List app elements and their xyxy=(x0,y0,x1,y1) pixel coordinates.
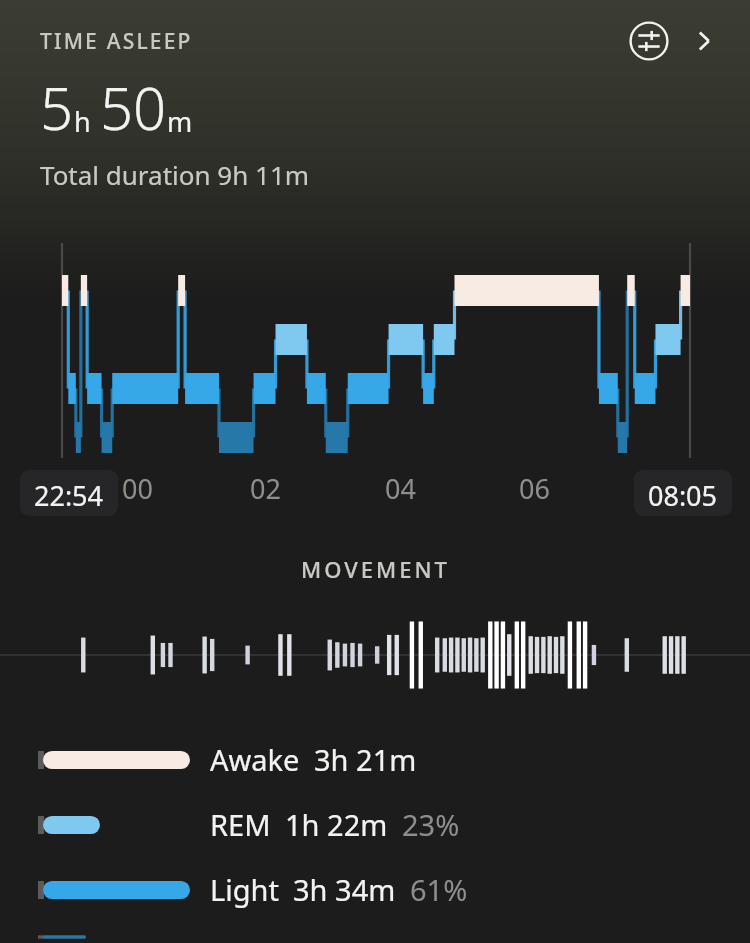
button[interactable]: REM xyxy=(0,801,750,848)
staticText: 06 xyxy=(519,470,550,507)
button[interactable]: Deep xyxy=(0,931,750,943)
staticText: 5 xyxy=(40,68,74,147)
staticText: 02 xyxy=(250,470,281,507)
staticText: 22:54 xyxy=(34,477,104,509)
button[interactable]: Details xyxy=(682,19,726,63)
button[interactable]: 08:05 xyxy=(634,470,732,516)
staticText: 3h 21m xyxy=(314,740,417,779)
button[interactable]: Movement chart xyxy=(0,616,750,694)
staticText: REM xyxy=(210,805,271,844)
staticText: 50 xyxy=(100,68,167,147)
staticText: TIME ASLEEP xyxy=(40,27,193,56)
staticText: Light xyxy=(210,870,279,909)
staticText: m xyxy=(167,103,193,140)
staticText: 61% xyxy=(410,870,468,909)
staticText: Awake xyxy=(210,740,300,779)
button[interactable]: Light xyxy=(0,866,750,913)
staticText: 00 xyxy=(122,470,153,507)
staticText: 08:05 xyxy=(648,477,718,509)
staticText: h xyxy=(74,103,91,140)
button[interactable]: Adjust sleep stages xyxy=(626,18,672,64)
staticText: Total duration 9h 11m xyxy=(40,157,310,192)
staticText: MOVEMENT xyxy=(301,554,450,584)
staticText: 1h 22m xyxy=(285,805,388,844)
staticText: 04 xyxy=(385,470,416,507)
button[interactable]: Sleep stage chart xyxy=(0,237,750,462)
staticText: 3h 34m xyxy=(293,870,396,909)
button[interactable]: Awake xyxy=(0,736,750,783)
button[interactable]: 22:54 xyxy=(20,470,118,516)
staticText: 23% xyxy=(402,805,460,844)
